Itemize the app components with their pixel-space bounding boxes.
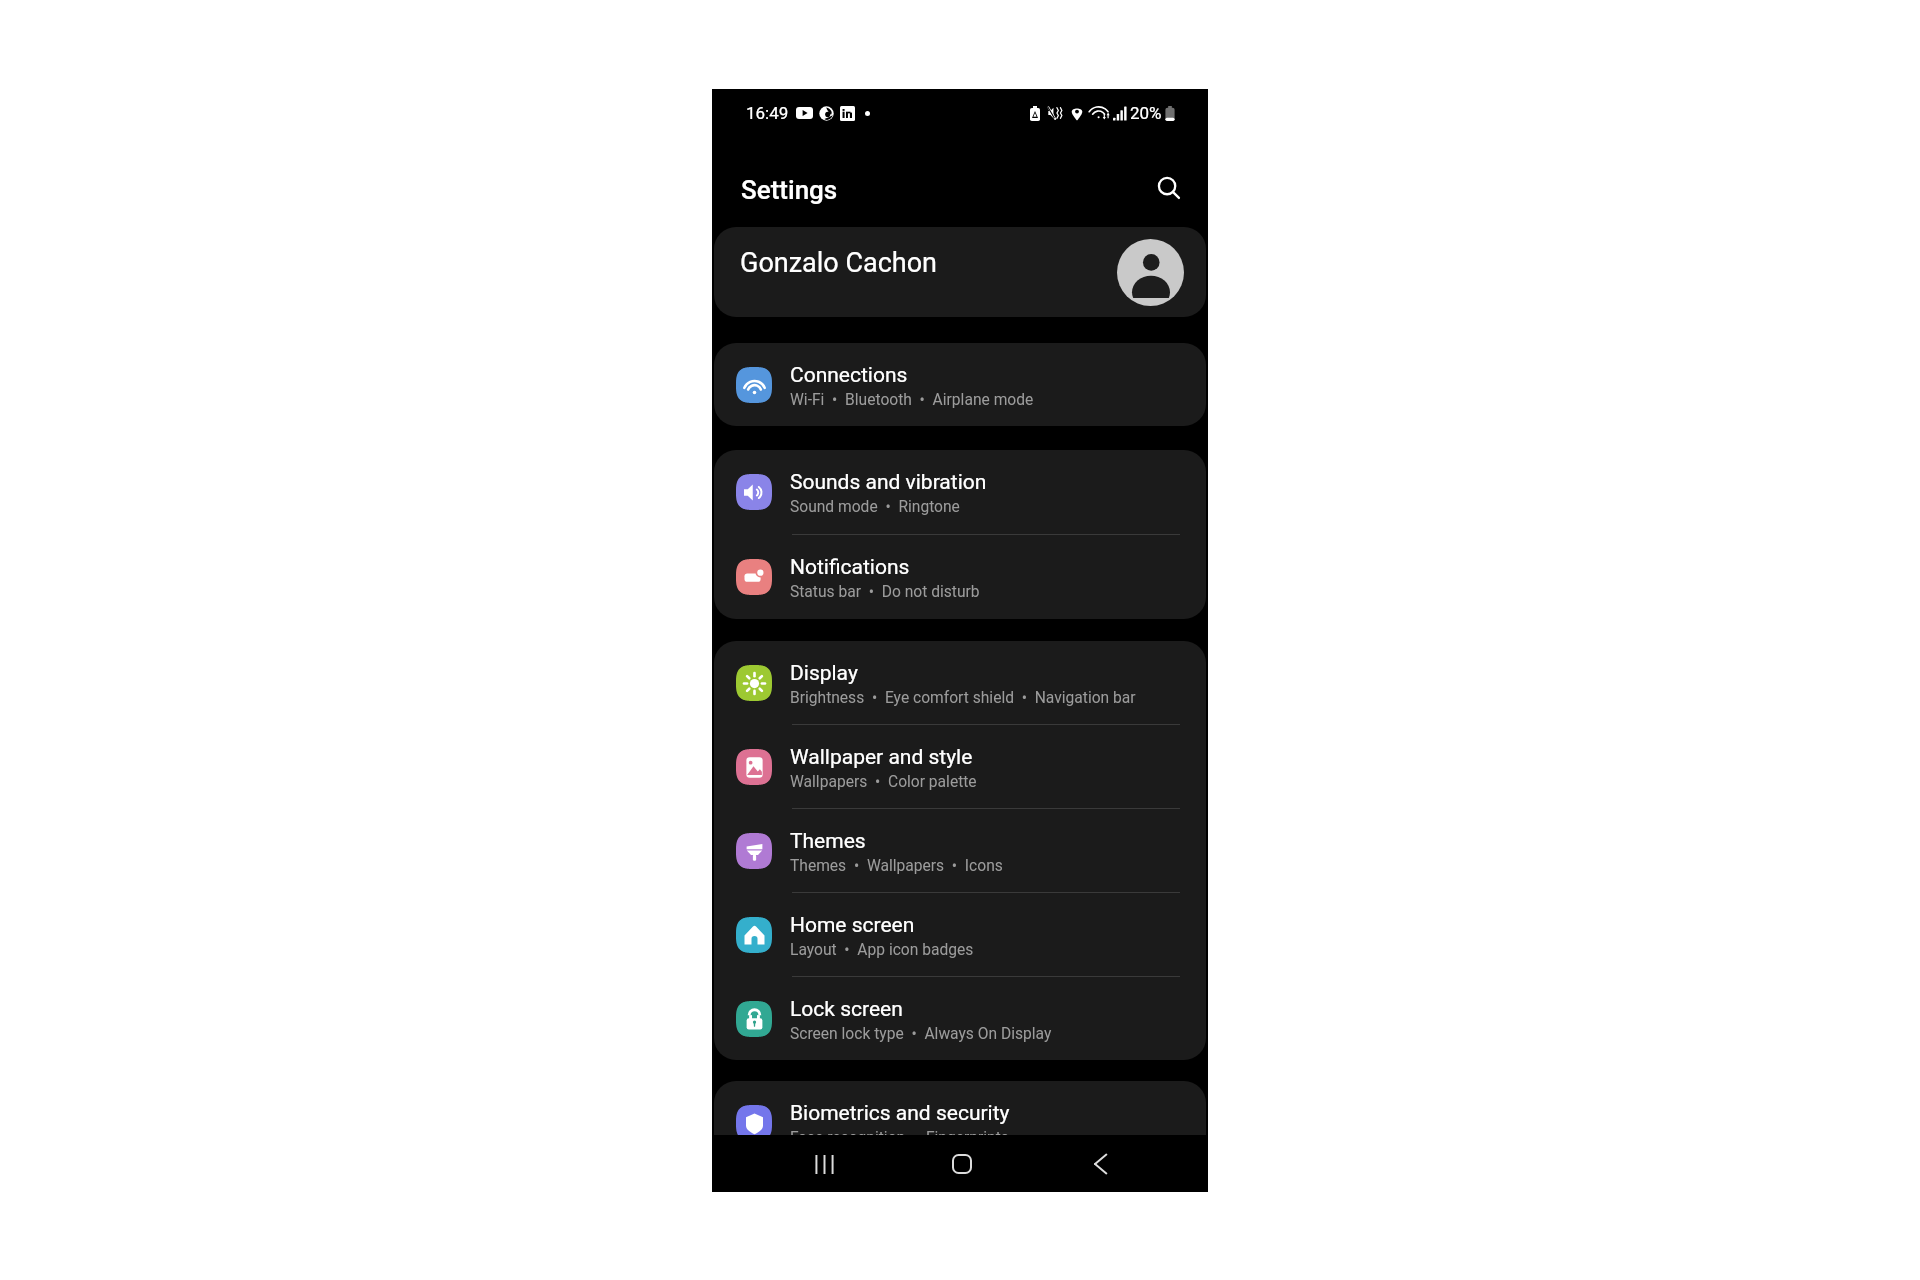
staticText: Wi-Fi • Bluetooth • Airplane mode [790, 391, 1034, 409]
button[interactable]: Notifications [714, 535, 1206, 619]
staticText: Settings [741, 175, 838, 205]
staticText: Screen lock type • Always On Display [790, 1025, 1052, 1043]
staticText: 20% [1130, 103, 1162, 123]
staticText: Display [790, 661, 858, 686]
staticText: Notifications [790, 555, 910, 580]
button[interactable]: Gonzalo Cachon [714, 227, 1206, 317]
staticText: Lock screen [790, 997, 903, 1022]
button[interactable]: Home screen [714, 893, 1206, 976]
button[interactable]: Display [714, 641, 1206, 724]
staticText: Face recognition • Fingerprints [790, 1129, 1009, 1147]
button[interactable]: Home [934, 1136, 990, 1192]
button[interactable]: Wallpaper and style [714, 725, 1206, 808]
button[interactable]: Connections [714, 343, 1206, 426]
button[interactable]: Sounds and vibration [714, 450, 1206, 534]
staticText: Sound mode • Ringtone [790, 498, 960, 516]
staticText: Biometrics and security [790, 1101, 1010, 1126]
button[interactable]: Themes [714, 809, 1206, 892]
staticText: Gonzalo Cachon [740, 247, 938, 279]
button[interactable]: Lock screen [714, 977, 1206, 1060]
staticText: Connections [790, 363, 908, 388]
staticText: 16:49 [746, 103, 789, 123]
staticText: Wallpaper and style [790, 745, 973, 770]
staticText: Wallpapers • Color palette [790, 773, 977, 791]
button[interactable]: Recents [796, 1136, 852, 1192]
staticText: Home screen [790, 913, 915, 938]
button[interactable]: Biometrics and security [714, 1081, 1206, 1164]
staticText: Status bar • Do not disturb [790, 583, 980, 601]
staticText: Themes • Wallpapers • Icons [790, 857, 1003, 875]
staticText: Brightness • Eye comfort shield • Naviga… [790, 689, 1136, 707]
staticText: Layout • App icon badges [790, 941, 974, 959]
staticText: Sounds and vibration [790, 470, 987, 495]
button[interactable]: Search [1152, 171, 1187, 206]
staticText: Themes [790, 829, 866, 854]
button[interactable]: Back [1072, 1136, 1128, 1192]
